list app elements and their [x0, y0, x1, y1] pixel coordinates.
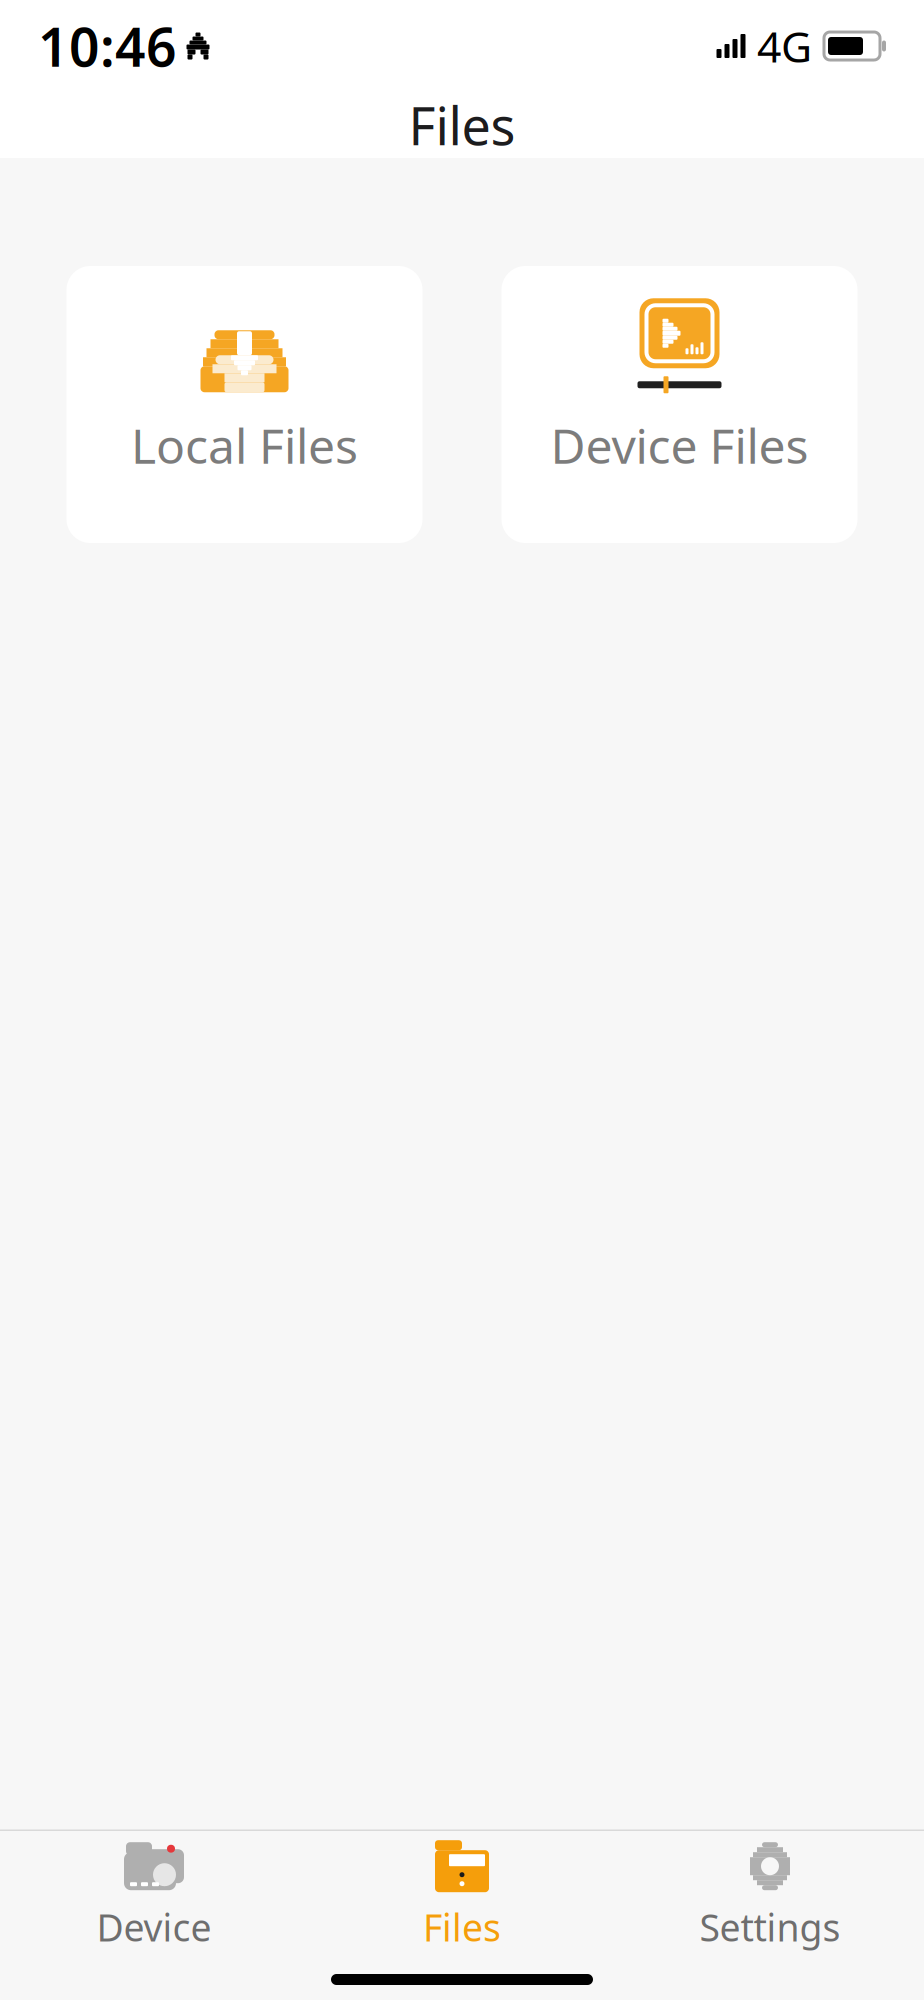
button[interactable]: Settings: [616, 1826, 924, 1964]
staticText: Device: [96, 1902, 211, 1952]
staticText: Files: [408, 90, 515, 160]
staticText: Files: [423, 1902, 501, 1952]
button[interactable]: Local Files: [66, 266, 422, 543]
button[interactable]: Device: [0, 1826, 308, 1964]
staticText: 4G: [757, 18, 812, 74]
staticText: 10:46: [38, 11, 177, 81]
staticText: Device Files: [550, 413, 808, 477]
button[interactable]: Files: [308, 1826, 616, 1964]
staticText: Local Files: [131, 413, 358, 477]
button[interactable]: Device Files: [501, 266, 857, 543]
staticText: Settings: [699, 1902, 840, 1952]
